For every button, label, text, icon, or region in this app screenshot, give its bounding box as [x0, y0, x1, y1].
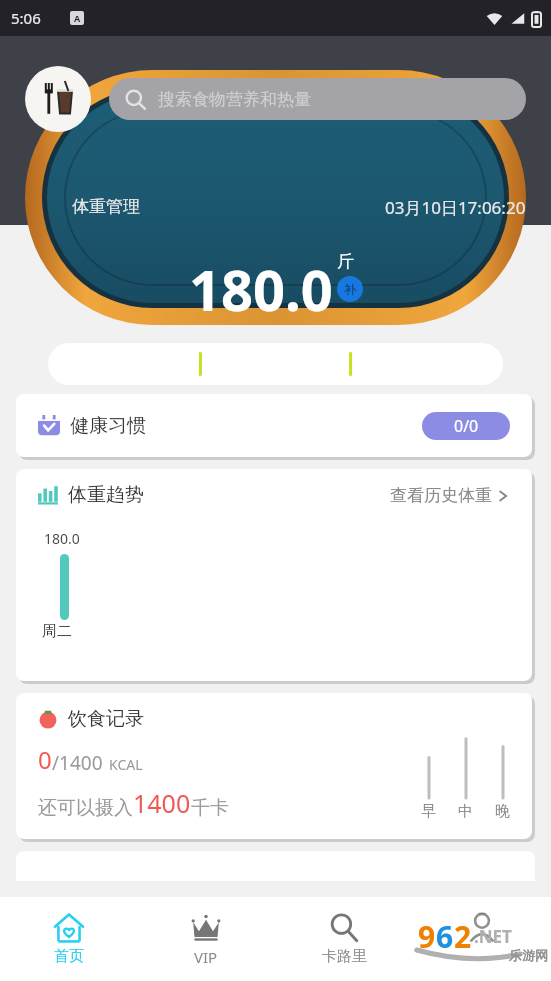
staticText: 0/0 — [454, 415, 479, 437]
button[interactable]: 饮食记录 — [16, 693, 532, 839]
staticText: 晚 — [495, 802, 510, 821]
staticText: 健康习惯 — [70, 414, 146, 438]
button[interactable]: 首页 — [0, 897, 137, 981]
button[interactable]: 我的 — [413, 897, 551, 981]
staticText: 体重趋势 — [68, 483, 144, 507]
staticText: 180.0 — [44, 529, 80, 548]
staticText: 查看历史体重 — [390, 485, 492, 506]
staticText: 搜索食物营养和热量 — [158, 89, 311, 110]
staticText: 斤 — [337, 251, 354, 272]
staticText: 9 — [418, 916, 436, 957]
button[interactable]: Profile — [25, 66, 91, 132]
staticText: 体重管理 — [72, 196, 140, 217]
button[interactable]: 补 — [337, 276, 363, 302]
button[interactable]: 0/0 — [422, 412, 510, 440]
staticText: 6 — [436, 916, 454, 957]
staticText: 千卡 — [191, 796, 229, 820]
staticText: 周二 — [42, 622, 72, 641]
button[interactable]: 体重趋势 — [16, 469, 532, 681]
staticText: 饮食记录 — [68, 707, 144, 731]
staticText: VIP — [194, 947, 218, 967]
button[interactable]: 搜索食物营养和热量 — [109, 78, 526, 120]
staticText: 补 — [344, 282, 356, 297]
staticText: 卡路里 — [322, 947, 367, 966]
staticText: A — [74, 12, 81, 24]
button[interactable]: 查看历史体重 — [390, 485, 510, 506]
staticText: 早 — [421, 802, 436, 821]
staticText: 180.0 — [189, 251, 333, 327]
staticText: 1400 — [133, 786, 191, 820]
staticText: 5:06 — [11, 8, 41, 28]
staticText: 乐游网 — [509, 947, 548, 963]
staticText: 中 — [458, 802, 473, 821]
staticText: 还可以摄入 — [38, 796, 133, 820]
button[interactable]: VIP — [137, 897, 275, 981]
staticText: 03月10日17:06:20 — [385, 196, 526, 219]
button[interactable]: 健康习惯 — [16, 394, 532, 457]
staticText: /1400 — [52, 750, 103, 776]
staticText: 首页 — [54, 947, 84, 966]
staticText: .NET — [474, 925, 512, 948]
staticText: 0 — [38, 743, 52, 776]
staticText: 2 — [454, 916, 472, 957]
staticText: KCAL — [109, 755, 143, 774]
button[interactable] — [48, 343, 503, 385]
button[interactable]: 卡路里 — [275, 897, 413, 981]
